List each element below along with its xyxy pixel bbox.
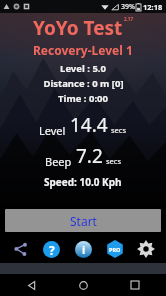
staticText: Recovery-Level 1: [33, 42, 133, 58]
staticText: Level : 5.0: [60, 62, 106, 75]
staticText: 7.2: [76, 143, 103, 169]
button[interactable]: Settings: [134, 237, 158, 261]
staticText: 12:18: [143, 2, 163, 12]
staticText: YoYo Test: [33, 15, 123, 41]
button[interactable]: Pro version: [103, 237, 127, 261]
staticText: 39%: [121, 2, 135, 12]
staticText: Time : 0:00: [58, 92, 108, 105]
staticText: PRO: [109, 246, 121, 253]
button[interactable]: Help: [39, 237, 63, 261]
staticText: i: [82, 242, 86, 257]
staticText: Level: [39, 123, 66, 138]
staticText: ?: [49, 242, 55, 258]
button[interactable]: Info: [71, 237, 95, 261]
button[interactable]: Home: [74, 276, 92, 294]
button[interactable]: Recent apps: [126, 276, 144, 294]
staticText: Beep: [45, 154, 72, 169]
staticText: Start: [70, 213, 97, 229]
staticText: secs: [111, 125, 127, 135]
staticText: Speed: 10.0 Kph: [44, 175, 122, 189]
staticText: secs: [106, 156, 122, 166]
button[interactable]: Share: [8, 237, 32, 261]
button[interactable]: Start: [5, 209, 161, 232]
staticText: Distance : 0 m [0]: [43, 77, 124, 90]
staticText: 14.4: [70, 112, 108, 138]
staticText: 2.17: [124, 16, 133, 22]
button[interactable]: Back: [22, 276, 40, 294]
